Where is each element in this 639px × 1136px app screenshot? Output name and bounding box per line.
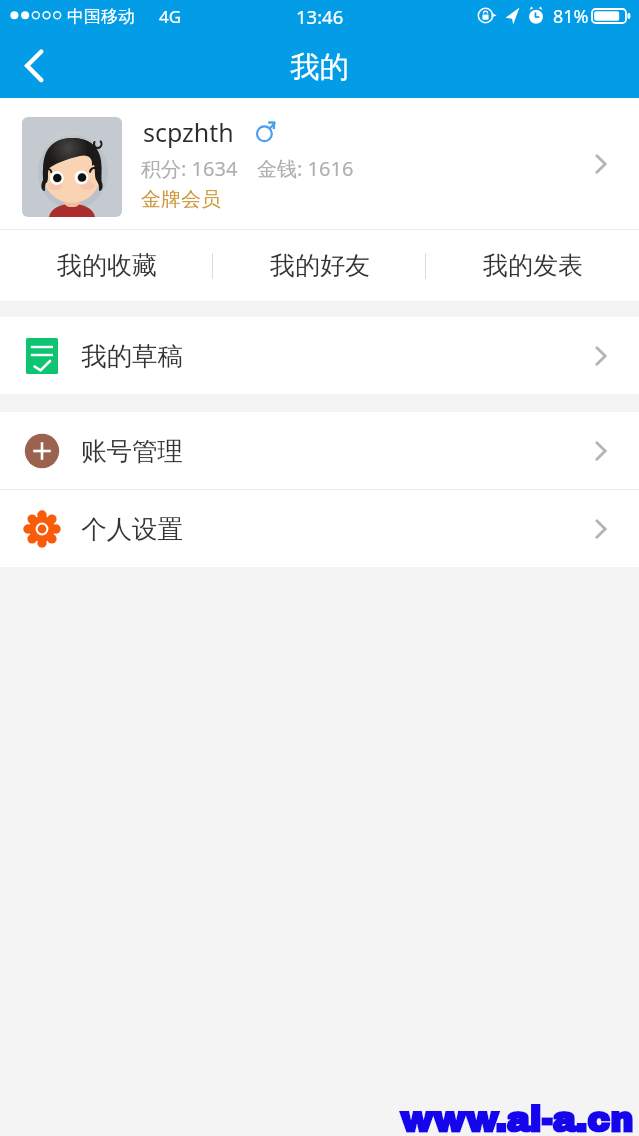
staticText: www.ai-a.cn [400,1102,633,1136]
staticText: 我的 [290,49,349,86]
staticText: 我的收藏 [57,250,157,281]
button[interactable]: 我的草稿 [0,317,639,394]
button[interactable]: 我的发表 [426,230,639,301]
staticText: 4G [159,5,182,28]
staticText: 金牌会员 [141,187,221,212]
staticText: scpzhth [143,115,234,149]
button[interactable]: 账号管理 [0,412,639,489]
staticText: 账号管理 [81,435,183,467]
staticText: 我的好友 [270,250,370,281]
button[interactable]: 个人设置 [0,490,639,567]
staticText: 个人设置 [81,513,183,545]
staticText: 我的草稿 [81,340,183,372]
staticText: 积分: 1634 [141,155,238,182]
staticText: 81% [553,4,589,29]
staticText: 13:46 [296,4,344,29]
button[interactable]: 我的收藏 [0,230,213,301]
button[interactable]: Back [0,36,68,98]
button[interactable]: 我的好友 [213,230,426,301]
staticText: 中国移动 [67,6,135,27]
staticText: 金钱: 1616 [257,155,354,182]
button[interactable]: scpzhth [0,98,639,229]
staticText: 我的发表 [483,250,583,281]
